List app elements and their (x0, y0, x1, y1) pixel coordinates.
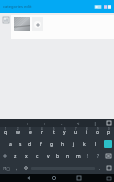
button[interactable]: Home (41, 174, 66, 182)
button[interactable]: ? (93, 150, 103, 162)
staticText: 2 (17, 127, 19, 131)
staticText: b (56, 153, 60, 160)
button[interactable]: Backspace (103, 150, 114, 162)
button[interactable]: , (13, 162, 21, 174)
staticText: t (53, 129, 55, 136)
button[interactable]: Space (31, 165, 95, 171)
button[interactable]: Photo (14, 17, 30, 31)
button[interactable]: g (46, 138, 57, 150)
staticText: d (28, 141, 32, 148)
button[interactable]: : (36, 119, 53, 127)
staticText: j (73, 141, 75, 148)
staticText: 3 (29, 127, 31, 131)
staticText: | (94, 121, 97, 126)
button[interactable]: c (32, 150, 43, 162)
staticText: 6 (64, 127, 66, 131)
button[interactable]: . (96, 162, 104, 174)
button[interactable]: k (79, 138, 90, 150)
button[interactable]: n (63, 150, 73, 162)
staticText: n (66, 153, 70, 160)
button[interactable]: | (87, 119, 104, 127)
staticText: 5 (53, 127, 55, 131)
button[interactable]: h (57, 138, 68, 150)
button[interactable]: Shift (0, 150, 10, 162)
button[interactable]: x (21, 150, 32, 162)
button[interactable]: 3 (24, 127, 36, 138)
button[interactable]: 1 (0, 127, 12, 138)
staticText: < (77, 121, 80, 126)
staticText: 4 (41, 127, 43, 131)
button[interactable]: Symbols (0, 162, 13, 174)
staticText: r (41, 129, 44, 136)
button[interactable]: Done (104, 4, 111, 10)
button[interactable]: Add photo (32, 17, 43, 31)
staticText: 0 (108, 127, 110, 131)
staticText: m (76, 153, 81, 160)
button[interactable]: j (68, 138, 79, 150)
staticText: c (36, 153, 39, 160)
staticText: w (16, 129, 20, 136)
button[interactable]: Attach (94, 4, 102, 10)
staticText: - (61, 121, 63, 126)
button[interactable]: ! (83, 150, 93, 162)
button[interactable]: Voice input (21, 162, 30, 174)
button[interactable]: - (53, 119, 70, 127)
staticText: . (99, 165, 101, 171)
staticText: : (44, 121, 46, 126)
staticText: u (74, 129, 78, 136)
staticText: o (96, 129, 100, 136)
button[interactable]: 7 (70, 127, 81, 138)
button[interactable]: b (53, 150, 63, 162)
staticText: ! (87, 153, 89, 159)
button[interactable]: Settings (104, 119, 114, 127)
button[interactable]: z (10, 150, 21, 162)
staticText: v (47, 153, 50, 160)
button[interactable]: 6 (59, 127, 70, 138)
button[interactable]: m (73, 150, 83, 162)
staticText: 9 (97, 127, 99, 131)
button[interactable]: 0 (103, 127, 114, 138)
staticText: : (27, 121, 29, 126)
staticText: z (14, 153, 17, 160)
button[interactable]: 4 (36, 127, 48, 138)
button[interactable]: Back (16, 174, 41, 182)
button[interactable]: Recent apps (66, 174, 91, 182)
button[interactable]: d (25, 138, 35, 150)
staticText: 8 (86, 127, 88, 131)
button[interactable]: 2 (12, 127, 24, 138)
button[interactable]: Enter (102, 139, 113, 149)
staticText: f (40, 141, 42, 148)
button[interactable]: : (20, 119, 36, 127)
staticText: q (4, 129, 8, 136)
staticText: a (9, 141, 12, 148)
staticText: categories edit (3, 4, 32, 9)
button[interactable]: v (43, 150, 53, 162)
staticText: y (63, 129, 66, 136)
button[interactable]: f (35, 138, 46, 150)
staticText: i (86, 129, 88, 136)
staticText: s (19, 141, 22, 148)
staticText: x (25, 153, 28, 160)
button[interactable]: Emoji (104, 162, 114, 174)
button[interactable]: 8 (81, 127, 92, 138)
button[interactable]: Photo (11, 15, 114, 39)
button[interactable]: 5 (48, 127, 59, 138)
button[interactable]: s (15, 138, 25, 150)
staticText: 7 (75, 127, 77, 131)
button[interactable]: a (5, 138, 15, 150)
button[interactable]: Hide keyboard (104, 174, 114, 182)
staticText: e (29, 129, 32, 136)
button[interactable]: < (70, 119, 87, 127)
staticText: k (83, 141, 86, 148)
button[interactable]: 9 (92, 127, 103, 138)
staticText: p (107, 129, 111, 136)
button[interactable]: Image (3, 17, 9, 23)
staticText: ? (97, 153, 99, 159)
button[interactable]: l (90, 138, 101, 150)
staticText: h (61, 141, 65, 148)
staticText: 1 (5, 127, 7, 131)
staticText: l (95, 141, 97, 148)
staticText: ?1□ (3, 166, 10, 171)
staticText: , (16, 165, 18, 171)
staticText: g (50, 141, 54, 148)
